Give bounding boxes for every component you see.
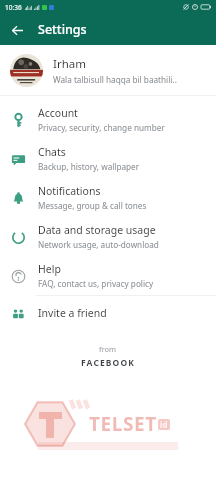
button[interactable]: Account [0,100,216,139]
staticText: Help [38,262,61,276]
staticText: Wala talbisull haqqa bil baathili.. [53,74,177,85]
staticText: Message, group & call tones [38,200,147,211]
staticText: Notifications [38,184,101,198]
button[interactable]: Data and storage usage [0,217,216,256]
button[interactable]: Invite a friend [0,296,216,330]
button[interactable]: Chats [0,139,216,178]
staticText: FACEBOOK [81,357,135,369]
staticText: id [160,419,168,430]
staticText: Account [38,106,78,120]
staticText: Invite a friend [38,306,107,320]
staticText: from [99,344,117,354]
button[interactable]: Irham [0,45,216,95]
staticText: Settings [38,21,87,38]
button[interactable]: Notifications [0,178,216,217]
staticText: Irham [53,56,86,72]
button[interactable]: Help [0,256,216,295]
button[interactable]: Back [4,17,30,43]
staticText: Data and storage usage [38,223,156,237]
staticText: Backup, history, wallpaper [38,161,140,172]
staticText: TELSET [89,411,157,437]
staticText: Privacy, security, change number [38,122,165,133]
staticText: 10:36 [5,3,22,12]
staticText: Chats [38,145,66,159]
staticText: Network usage, auto-download [38,239,159,250]
staticText: FAQ, contact us, privacy policy [38,278,154,289]
